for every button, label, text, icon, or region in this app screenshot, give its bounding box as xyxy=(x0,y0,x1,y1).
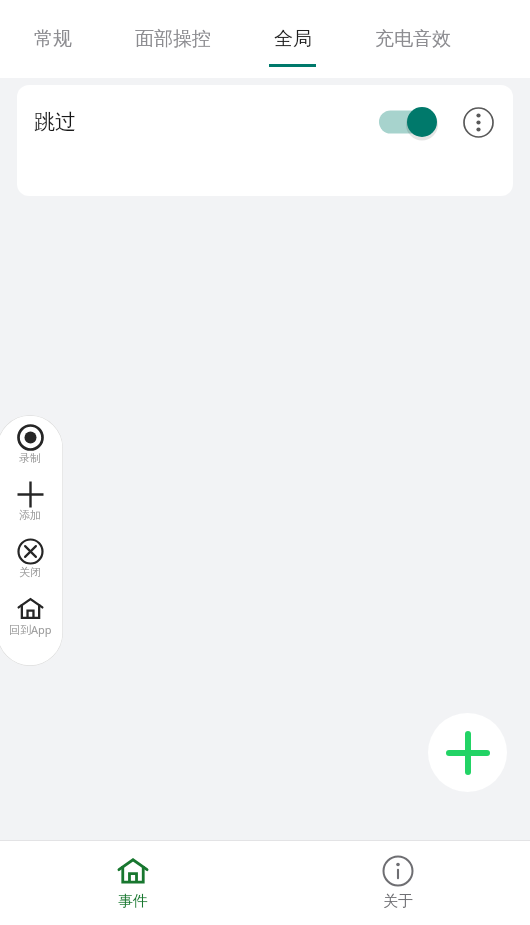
button[interactable]: 回到App xyxy=(0,595,63,652)
button[interactable]: 关于 xyxy=(265,841,530,925)
button[interactable]: 常规 xyxy=(0,0,105,78)
staticText: 全局 xyxy=(274,27,312,51)
staticText: 面部操控 xyxy=(135,27,211,51)
staticText: 录制 xyxy=(19,451,41,465)
button[interactable]: 全局 xyxy=(240,0,344,78)
staticText: 常规 xyxy=(34,27,72,51)
staticText: 添加 xyxy=(19,508,41,522)
button[interactable]: 面部操控 xyxy=(105,0,240,78)
button[interactable]: 添加 xyxy=(0,481,63,538)
button[interactable]: 关闭 xyxy=(0,538,63,595)
button[interactable]: 录制 xyxy=(0,424,63,481)
button[interactable]: 充电音效 xyxy=(344,0,481,78)
button[interactable]: Toggle 跳过 xyxy=(373,102,431,142)
staticText: 关闭 xyxy=(19,565,41,579)
button[interactable]: 事件 xyxy=(0,841,265,925)
button[interactable]: Add event xyxy=(428,713,507,792)
staticText: 回到App xyxy=(9,622,52,637)
staticText: 事件 xyxy=(118,892,148,911)
staticText: 跳过 xyxy=(34,109,76,135)
button[interactable]: 跳过 xyxy=(17,85,513,196)
staticText: 关于 xyxy=(383,892,413,911)
staticText: 充电音效 xyxy=(375,27,451,51)
button[interactable]: More options xyxy=(459,103,497,141)
